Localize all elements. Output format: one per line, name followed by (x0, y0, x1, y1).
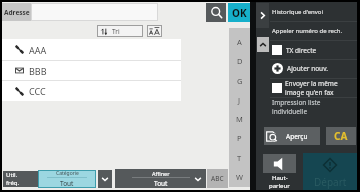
button[interactable]: TX directe (272, 40, 357, 59)
button[interactable]: G (229, 73, 250, 89)
button[interactable]: Scroll up (257, 37, 269, 52)
button[interactable]: Util. (3, 171, 38, 187)
button[interactable]: BBB (2, 61, 181, 80)
staticText: G (237, 76, 243, 86)
button[interactable]: Départ (303, 153, 357, 190)
button[interactable]: Ajouter nouv. (272, 59, 357, 78)
staticText: Catégorie (56, 170, 79, 177)
staticText: Tout (60, 179, 74, 188)
staticText: W (236, 172, 243, 182)
staticText: TX directe (286, 46, 317, 55)
staticText: Tout (154, 179, 168, 188)
button[interactable]: Affiner (115, 169, 206, 188)
staticText: Affiner (152, 170, 170, 177)
staticText: Ajouter nouv. (287, 64, 328, 73)
button[interactable]: Catégorie (38, 170, 96, 188)
staticText: parleur (269, 182, 290, 190)
button[interactable]: Impression liste (272, 97, 357, 117)
button[interactable]: Category options (98, 170, 112, 188)
staticText: M (236, 114, 243, 124)
button[interactable]: Search (206, 3, 226, 22)
staticText: Envoyer la même (285, 79, 338, 88)
button[interactable]: Speaker (263, 154, 296, 173)
staticText: OK (232, 6, 247, 20)
staticText: D (237, 56, 243, 66)
button[interactable]: J (229, 92, 250, 108)
button[interactable]: ABC (207, 169, 228, 188)
staticText: individuelle (272, 107, 308, 116)
staticText: Aperçu (286, 132, 308, 141)
button[interactable]: D (229, 53, 250, 69)
staticText: J (238, 95, 241, 105)
button[interactable]: OK (228, 3, 250, 22)
staticText: CA (334, 129, 348, 143)
button[interactable]: Adresse (2, 3, 31, 21)
button[interactable]: W (229, 169, 250, 185)
staticText: CCC (29, 85, 46, 97)
staticText: BBB (29, 65, 47, 77)
staticText: Util. (6, 171, 18, 179)
staticText: ABC (211, 174, 224, 183)
staticText: Adresse (4, 8, 30, 17)
staticText: Impression liste (272, 98, 321, 107)
staticText: Historique d'envoi (272, 8, 324, 16)
button[interactable]: Text size (147, 25, 162, 37)
staticText: P (237, 133, 242, 143)
staticText: A (237, 37, 242, 47)
staticText: Tri (112, 27, 120, 36)
button[interactable]: P (229, 130, 250, 146)
button[interactable]: CA (326, 127, 356, 145)
staticText: image qu'en fax (285, 88, 334, 97)
staticText: Appeler numéro de rech. (272, 27, 343, 35)
staticText: fréq. (6, 179, 20, 187)
button[interactable]: A (229, 34, 250, 50)
button[interactable]: Aperçu (264, 127, 320, 145)
staticText: Haut- (272, 174, 288, 182)
button[interactable]: AAA (2, 39, 181, 60)
button[interactable]: T (229, 150, 250, 166)
staticText: T (237, 153, 242, 163)
staticText: Départ (314, 175, 347, 189)
button[interactable]: CCC (2, 81, 181, 101)
button[interactable]: M (229, 111, 250, 127)
button[interactable]: Historique d'envoi (272, 2, 357, 21)
button[interactable]: Expand panel (256, 3, 269, 28)
staticText: AAA (29, 44, 47, 56)
button[interactable]: Envoyer la même (272, 78, 357, 97)
button[interactable]: Tri (97, 25, 143, 37)
button[interactable]: Appeler numéro de rech. (272, 21, 357, 40)
